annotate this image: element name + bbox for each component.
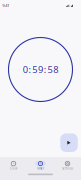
button[interactable]: Start timer [60, 133, 78, 152]
staticText: 0:59:58 [23, 63, 58, 76]
staticText: Timer [37, 167, 44, 170]
staticText: Clock [10, 167, 17, 170]
button[interactable]: Settings [54, 161, 81, 170]
button[interactable]: Timer [27, 161, 54, 170]
staticText: Settings [62, 167, 73, 170]
button[interactable]: Clock [0, 161, 27, 170]
staticText: 9:41 [2, 3, 9, 8]
